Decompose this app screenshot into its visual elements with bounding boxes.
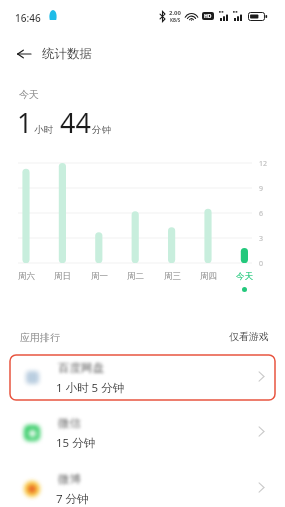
button[interactable]: Back <box>11 41 37 67</box>
button[interactable]: 微信 <box>0 410 285 455</box>
staticText: 小时 <box>34 124 53 136</box>
staticText: 2.00 <box>169 9 181 17</box>
button[interactable]: 微博 <box>0 466 285 507</box>
staticText: 微博 <box>58 472 81 486</box>
button[interactable]: 仅看游戏 <box>229 330 269 343</box>
staticText: 周六 <box>18 271 35 282</box>
staticText: 今天 <box>236 271 253 282</box>
staticText: 今天 <box>19 88 39 101</box>
staticText: 15 分钟 <box>56 435 96 451</box>
button[interactable]: 百度网盘 <box>0 355 285 400</box>
staticText: 16:46 <box>15 11 41 25</box>
staticText: 仅看游戏 <box>229 330 269 343</box>
staticText: 微信 <box>58 416 81 430</box>
staticText: 44 <box>60 104 91 141</box>
staticText: 应用排行 <box>20 331 60 344</box>
staticText: 3 <box>259 234 264 244</box>
staticText: 百度网盘 <box>58 361 104 375</box>
staticText: 1 <box>17 104 33 141</box>
staticText: 6 <box>259 209 264 219</box>
staticText: KB/S <box>170 17 181 23</box>
staticText: HD <box>204 13 212 20</box>
staticText: 12 <box>259 159 268 169</box>
staticText: 1 小时 5 分钟 <box>56 380 125 396</box>
staticText: 周一 <box>91 271 108 282</box>
staticText: 7 分钟 <box>56 491 89 507</box>
staticText: 9 <box>259 184 264 194</box>
staticText: 周三 <box>164 271 181 282</box>
staticText: 周二 <box>127 271 144 282</box>
staticText: 周四 <box>200 271 217 282</box>
staticText: 分钟 <box>92 124 111 136</box>
staticText: 周日 <box>54 271 71 282</box>
staticText: 统计数据 <box>42 46 92 62</box>
staticText: 0 <box>259 259 264 269</box>
